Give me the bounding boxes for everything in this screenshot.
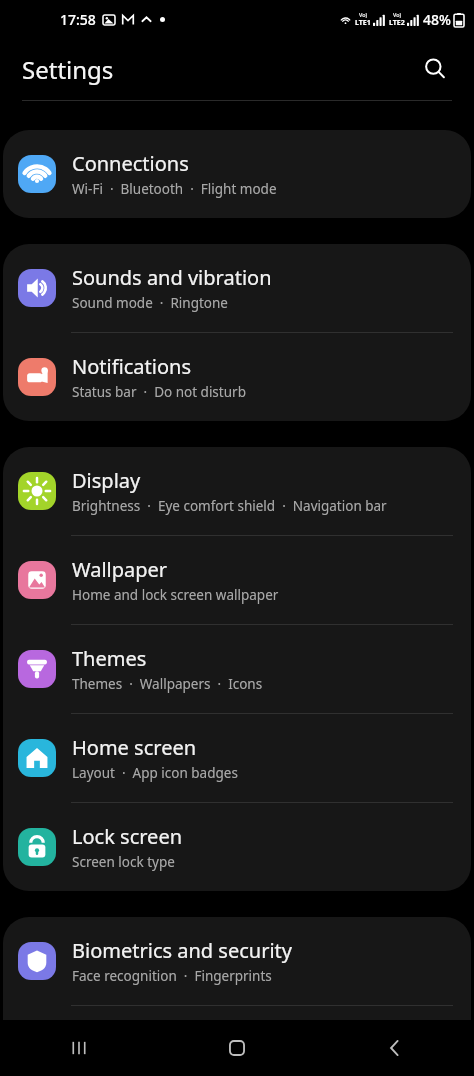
button[interactable]: Search settings bbox=[413, 47, 457, 91]
staticText: 17:58 bbox=[60, 10, 96, 29]
staticText: Settings bbox=[22, 53, 114, 86]
staticText: 48% bbox=[423, 10, 451, 29]
button[interactable]: Home screen bbox=[3, 714, 471, 802]
button[interactable]: Biometrics and security bbox=[3, 917, 471, 1005]
button[interactable]: Sounds and vibration bbox=[3, 244, 471, 332]
staticText: Screen lock type bbox=[72, 853, 175, 871]
staticText: Connections bbox=[72, 150, 189, 177]
staticText: LTE2 bbox=[389, 18, 405, 28]
button[interactable]: Display bbox=[3, 447, 471, 535]
staticText: Home screen bbox=[72, 734, 197, 761]
staticText: Sounds and vibration bbox=[72, 264, 272, 291]
staticText: Themes bbox=[72, 645, 147, 672]
staticText: Status bar · Do not disturb bbox=[72, 383, 246, 401]
button[interactable]: Wallpaper bbox=[3, 536, 471, 624]
button[interactable]: Recent apps bbox=[0, 1020, 158, 1076]
button[interactable]: Themes bbox=[3, 625, 471, 713]
staticText: Brightness · Eye comfort shield · Naviga… bbox=[72, 497, 387, 515]
button[interactable]: Lock screen bbox=[3, 803, 471, 891]
staticText: Lock screen bbox=[72, 823, 183, 850]
staticText: Themes · Wallpapers · Icons bbox=[72, 675, 263, 693]
staticText: Vo) bbox=[359, 11, 368, 18]
staticText: Vo) bbox=[393, 11, 402, 18]
button[interactable]: Back bbox=[316, 1020, 474, 1076]
button[interactable]: Notifications bbox=[3, 333, 471, 421]
staticText: Biometrics and security bbox=[72, 937, 292, 964]
staticText: LTE1 bbox=[355, 18, 371, 28]
staticText: Display bbox=[72, 467, 141, 494]
button[interactable]: Home bbox=[158, 1020, 316, 1076]
staticText: Layout · App icon badges bbox=[72, 764, 238, 782]
staticText: Home and lock screen wallpaper bbox=[72, 586, 279, 604]
button[interactable]: Connections bbox=[3, 130, 471, 218]
staticText: Wi-Fi · Bluetooth · Flight mode bbox=[72, 180, 277, 198]
staticText: Wallpaper bbox=[72, 556, 168, 583]
staticText: Notifications bbox=[72, 353, 191, 380]
staticText: Sound mode · Ringtone bbox=[72, 294, 228, 312]
staticText: Face recognition · Fingerprints bbox=[72, 967, 272, 985]
